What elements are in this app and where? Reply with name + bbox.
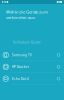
staticText: Samsung TV — [12, 53, 32, 57]
staticText: verbinden aus — [6, 15, 35, 20]
button[interactable]: Echo Dot 4 — [0, 73, 64, 85]
staticText: Wähle die Geräte zum — [6, 9, 48, 15]
button[interactable]: Samsung TV — [0, 49, 64, 61]
staticText: HP Drucker — [12, 65, 29, 69]
button[interactable]: HP Drucker — [0, 61, 64, 73]
staticText: Echo Dot 4 — [12, 76, 29, 81]
staticText: Verfügbare Geräte — [13, 40, 41, 44]
